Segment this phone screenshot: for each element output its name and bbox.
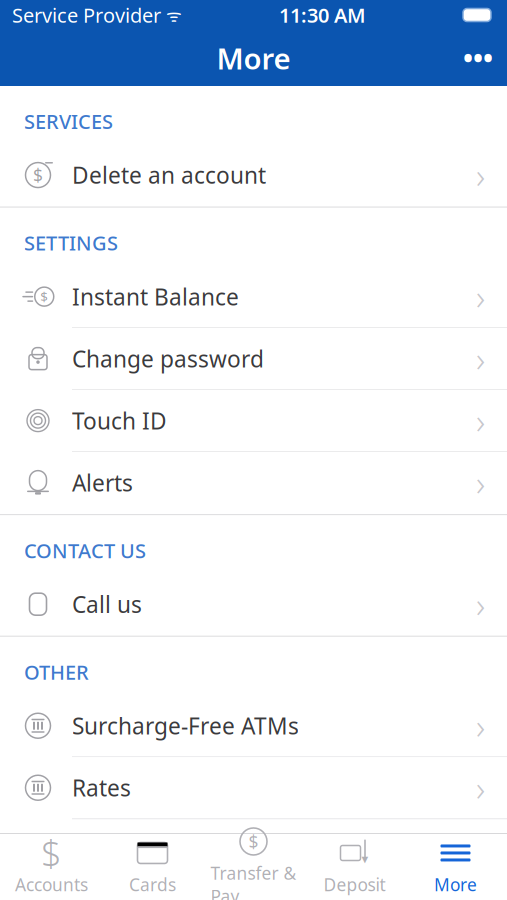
button[interactable]: Cards [102,834,203,900]
staticText: More [434,873,477,896]
staticText: Call us [72,589,142,619]
button[interactable]: Surcharge-Free ATMs [0,695,507,757]
staticText: $ [248,830,258,853]
staticText: Touch ID [72,406,167,436]
staticText: Service Provider [12,2,161,28]
staticText: › [476,152,485,198]
button[interactable]: Call us [0,574,507,636]
button[interactable]: More [405,834,506,900]
staticText: ▾ [361,851,368,866]
staticText: › [476,765,485,811]
staticText: 11:30 AM [279,2,366,28]
staticText: › [476,581,485,627]
staticText: SETTINGS [24,230,118,256]
staticText: › [476,336,485,382]
button[interactable]: Touch ID [0,390,507,452]
staticText: Rates [72,773,131,803]
staticText: Accounts [15,873,88,896]
staticText: SERVICES [24,108,113,135]
button[interactable]: Change password [0,328,507,390]
button[interactable]: $ [1,834,102,900]
button[interactable]: $ [0,145,507,207]
button[interactable]: More options [449,28,507,88]
staticText: More [216,38,290,77]
staticText: Alerts [72,468,133,498]
staticText: › [476,703,485,749]
staticText: › [476,398,485,444]
staticText: $ [40,288,48,305]
staticText: Instant Balance [72,282,239,312]
button[interactable]: ▾ [304,834,405,900]
staticText: ••• [463,40,493,76]
button[interactable]: $ [203,834,304,900]
staticText: Change password [72,344,264,374]
staticText: Surcharge-Free ATMs [72,711,299,741]
staticText: CONTACT US [24,537,146,564]
button[interactable]: $ [0,266,507,328]
button[interactable]: Alerts [0,452,507,514]
button[interactable]: Rates [0,757,507,819]
staticText: › [476,460,485,506]
staticText: $ [41,829,62,877]
staticText: Delete an account [72,160,266,190]
staticText: Transfer & Pay [210,861,296,900]
staticText: $ [33,164,43,187]
staticText: › [476,274,485,320]
staticText: ᯤ [161,3,182,26]
staticText: Deposit [323,873,385,896]
staticText: Cards [129,873,176,896]
staticText: OTHER [24,659,89,685]
